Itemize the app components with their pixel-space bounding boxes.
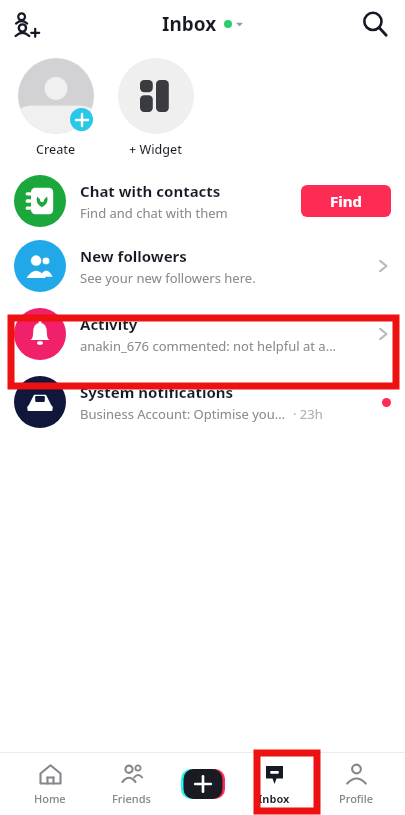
staticText: anakin_676 commented: not helpful at a… xyxy=(80,337,336,355)
button[interactable]: Add friends xyxy=(8,4,48,44)
button[interactable]: System notifications xyxy=(0,368,405,436)
button[interactable]: New followers xyxy=(0,232,405,300)
button[interactable]: Inbox xyxy=(242,758,306,810)
staticText: Inbox xyxy=(162,11,217,37)
staticText: See your new followers here. xyxy=(80,269,256,287)
button[interactable]: Profile xyxy=(324,758,388,810)
staticText: · 23h xyxy=(293,405,323,423)
button[interactable]: + Widget xyxy=(114,58,198,158)
button[interactable]: Home xyxy=(18,758,82,810)
staticText: Chat with contacts xyxy=(80,181,221,201)
staticText: Profile xyxy=(339,791,374,806)
staticText: Friends xyxy=(112,791,151,806)
button[interactable]: Chat with contacts xyxy=(0,170,405,232)
staticText: Find and chat with them xyxy=(80,204,228,222)
staticText: New followers xyxy=(80,246,187,266)
staticText: + Widget xyxy=(129,141,183,158)
staticText: Inbox xyxy=(258,791,290,806)
button[interactable]: Search xyxy=(357,6,393,42)
staticText: Activity xyxy=(80,314,138,334)
button[interactable]: Create xyxy=(14,58,98,158)
button[interactable]: Inbox xyxy=(162,11,243,37)
staticText: Create xyxy=(36,141,76,158)
staticText: Find xyxy=(330,191,362,211)
staticText: Business Account: Optimise you… xyxy=(80,405,285,423)
button[interactable]: Create xyxy=(181,769,225,799)
staticText: System notifications xyxy=(80,382,234,402)
button[interactable]: Friends xyxy=(99,758,163,810)
staticText: Home xyxy=(34,791,66,806)
button[interactable]: Find xyxy=(301,185,391,217)
button[interactable]: Activity xyxy=(0,300,405,368)
